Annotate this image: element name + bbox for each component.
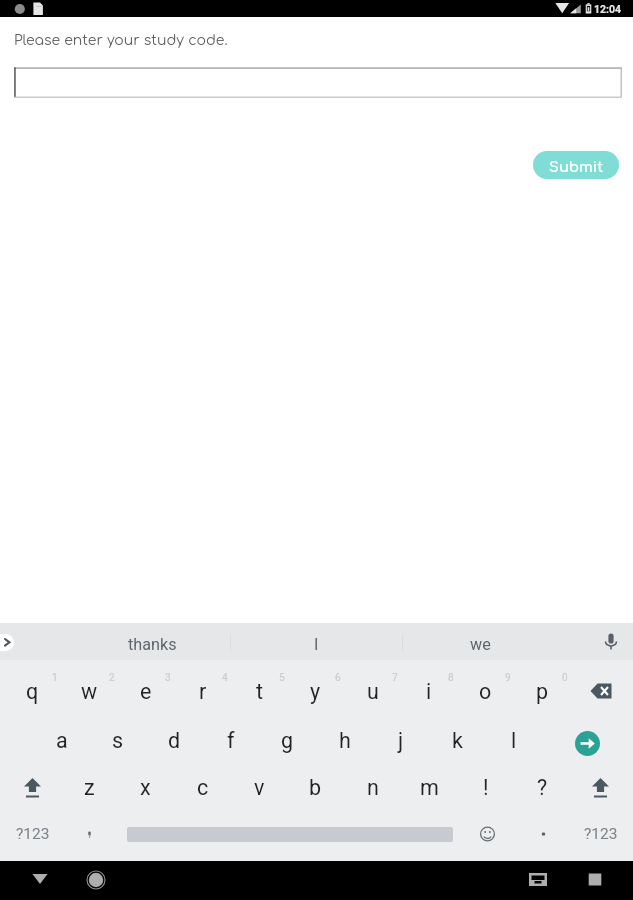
button[interactable]: Shift	[572, 764, 629, 810]
staticText: I	[314, 635, 319, 654]
staticText: d	[168, 728, 181, 753]
button[interactable]: Recent apps	[575, 860, 615, 899]
staticText: n	[367, 775, 379, 800]
staticText: !	[483, 775, 489, 800]
staticText: t	[256, 679, 264, 704]
button[interactable]: b	[287, 764, 344, 810]
button[interactable]: More suggestions	[0, 634, 14, 651]
button[interactable]: z	[61, 764, 118, 810]
staticText: g	[281, 728, 294, 753]
button[interactable]: ?123	[572, 811, 629, 857]
staticText: e	[140, 679, 152, 704]
staticText: 6	[335, 672, 341, 684]
button[interactable]: s	[89, 717, 146, 763]
button[interactable]: Submit	[533, 151, 619, 179]
button[interactable]: Shift	[4, 764, 61, 810]
button[interactable]: we	[420, 626, 540, 663]
staticText: z	[84, 775, 95, 800]
button[interactable]: Switch keyboard	[518, 860, 558, 899]
staticText: 4	[222, 672, 228, 684]
button[interactable]: Emoji	[459, 811, 516, 857]
button[interactable]: Home	[76, 859, 116, 898]
staticText: w	[81, 679, 98, 704]
button[interactable]: t	[231, 668, 288, 714]
staticText: a	[56, 728, 68, 753]
button[interactable]: Period	[515, 811, 572, 857]
staticText: 2	[109, 672, 115, 684]
button[interactable]: l	[485, 717, 542, 763]
staticText: Submit	[549, 159, 604, 175]
button[interactable]: y	[287, 668, 344, 714]
staticText: 1	[52, 672, 58, 684]
button[interactable]: p	[514, 668, 571, 714]
staticText: p	[536, 679, 549, 704]
button[interactable]: h	[316, 717, 373, 763]
staticText: i	[426, 679, 432, 704]
button[interactable]: Backspace	[573, 668, 630, 714]
button[interactable]: Hide keyboard	[20, 859, 60, 898]
button[interactable]: u	[344, 668, 401, 714]
button[interactable]: d	[146, 717, 203, 763]
staticText: r	[199, 679, 207, 704]
button[interactable]: e	[117, 668, 174, 714]
button[interactable]: ?123	[4, 811, 61, 857]
staticText: y	[310, 679, 321, 704]
button[interactable]: i	[400, 668, 457, 714]
staticText: 7	[392, 672, 398, 684]
staticText: v	[254, 775, 265, 800]
staticText: ?123	[16, 825, 50, 843]
staticText: 3	[165, 672, 171, 684]
staticText: b	[309, 775, 322, 800]
staticText: 9	[505, 672, 511, 684]
staticText: Please enter your study code.	[14, 33, 228, 49]
button[interactable]: thanks	[92, 626, 212, 663]
staticText: x	[140, 775, 151, 800]
staticText: f	[227, 728, 235, 753]
button[interactable]: k	[429, 717, 486, 763]
staticText: u	[367, 679, 379, 704]
button[interactable]: g	[259, 717, 316, 763]
button[interactable]: ?	[514, 764, 571, 810]
button[interactable]: Enter	[559, 720, 616, 766]
staticText: 0	[562, 672, 568, 684]
staticText: k	[452, 728, 463, 753]
button[interactable]: m	[401, 764, 458, 810]
button[interactable]: w	[61, 668, 118, 714]
staticText: we	[470, 635, 491, 654]
staticText: o	[479, 679, 492, 704]
button[interactable]: n	[344, 764, 401, 810]
button[interactable]: a	[33, 717, 90, 763]
button[interactable]: I	[256, 626, 376, 663]
button[interactable]: x	[117, 764, 174, 810]
button[interactable]	[14, 67, 622, 98]
staticText: c	[197, 775, 209, 800]
staticText: q	[26, 679, 39, 704]
button[interactable]: !	[457, 764, 514, 810]
button[interactable]: v	[231, 764, 288, 810]
staticText: thanks	[128, 635, 177, 654]
staticText: j	[398, 728, 404, 753]
staticText: ?	[537, 775, 548, 800]
staticText: h	[339, 728, 351, 753]
button[interactable]: r	[174, 668, 231, 714]
staticText: 12:04	[594, 3, 622, 15]
staticText: m	[420, 775, 439, 800]
button[interactable]: f	[202, 717, 259, 763]
button[interactable]: Voice input	[589, 623, 633, 660]
staticText: l	[511, 728, 517, 753]
button[interactable]: q	[4, 668, 61, 714]
staticText: ?123	[584, 825, 618, 843]
button[interactable]: o	[457, 668, 514, 714]
staticText: 5	[279, 672, 285, 684]
button[interactable]: j	[372, 717, 429, 763]
staticText: 8	[448, 672, 454, 684]
staticText: s	[112, 728, 124, 753]
button[interactable]: Comma	[61, 811, 118, 857]
button[interactable]: c	[174, 764, 231, 810]
